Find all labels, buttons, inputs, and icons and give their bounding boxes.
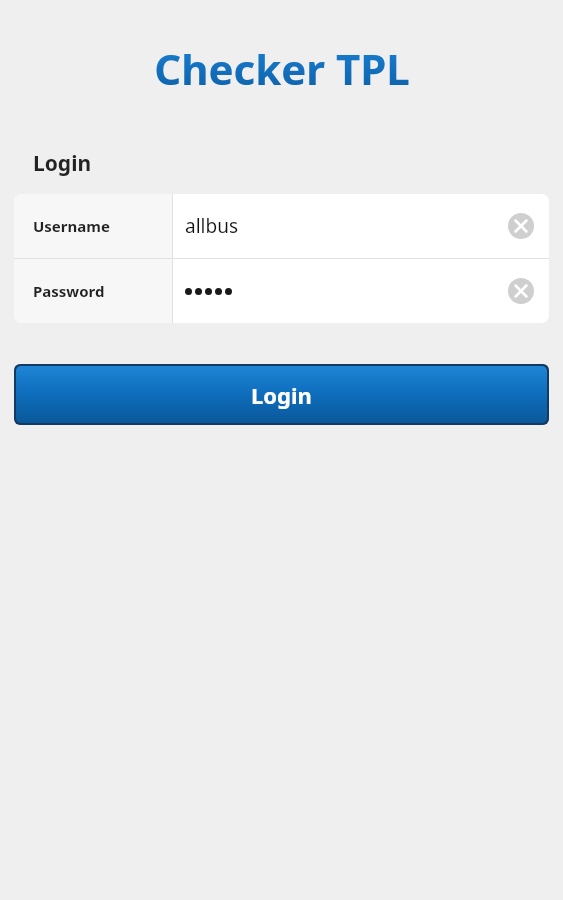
button[interactable]: Clear Password <box>508 278 534 304</box>
button[interactable]: Username <box>14 194 549 258</box>
staticText: Login <box>33 149 92 178</box>
staticText: Username <box>33 216 110 236</box>
button[interactable]: Login <box>16 366 547 423</box>
button[interactable]: Password <box>14 259 549 323</box>
button[interactable]: Clear Username <box>508 213 534 239</box>
staticText: Password <box>33 281 105 301</box>
staticText: allbus <box>185 213 238 239</box>
staticText: Checker TPL <box>154 40 410 97</box>
staticText: Login <box>251 380 312 410</box>
